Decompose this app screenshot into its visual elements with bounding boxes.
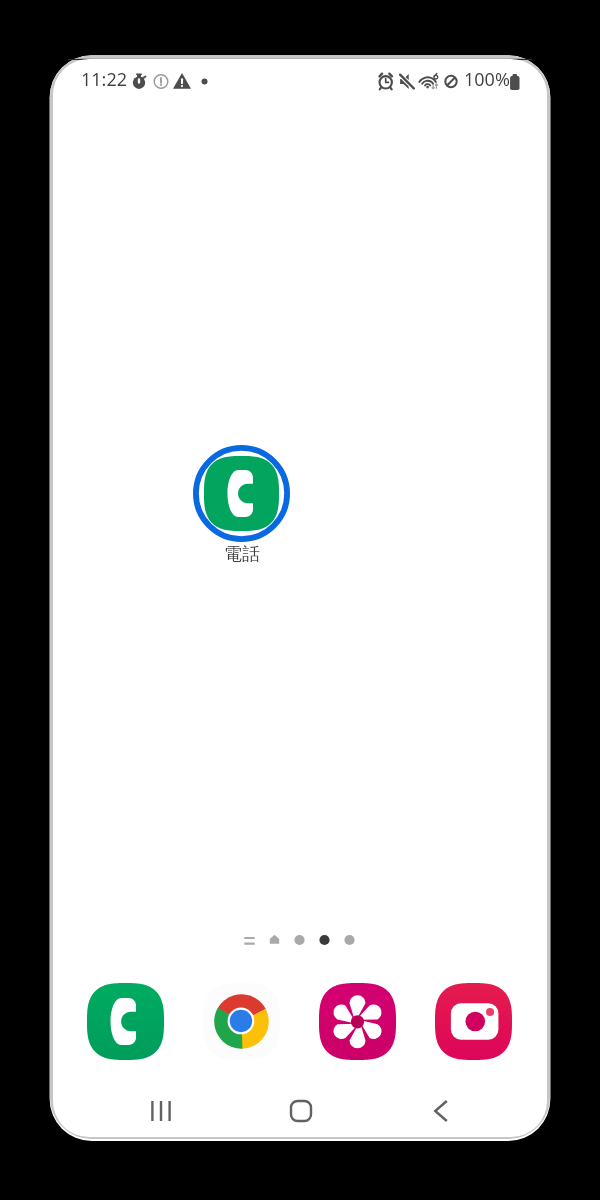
button[interactable]: 電話 [193, 445, 290, 563]
button[interactable]: Page 3 [287, 929, 312, 953]
button[interactable]: Page 1 [237, 929, 262, 953]
button[interactable]: Page 4 [312, 929, 337, 953]
button[interactable]: Gallery [319, 983, 396, 1060]
staticText: 11:22 [81, 67, 128, 92]
button[interactable]: Recents [133, 1087, 189, 1135]
button[interactable]: Back [413, 1087, 469, 1135]
button[interactable]: Phone [87, 983, 164, 1060]
button[interactable]: Camera [435, 983, 512, 1060]
button[interactable]: Home [273, 1087, 329, 1135]
button[interactable]: Page 2 [262, 929, 287, 953]
staticText: 電話 [224, 543, 260, 563]
button[interactable]: Chrome [203, 983, 280, 1060]
staticText: 100% [464, 67, 510, 92]
button[interactable]: Page 5 [337, 929, 362, 953]
